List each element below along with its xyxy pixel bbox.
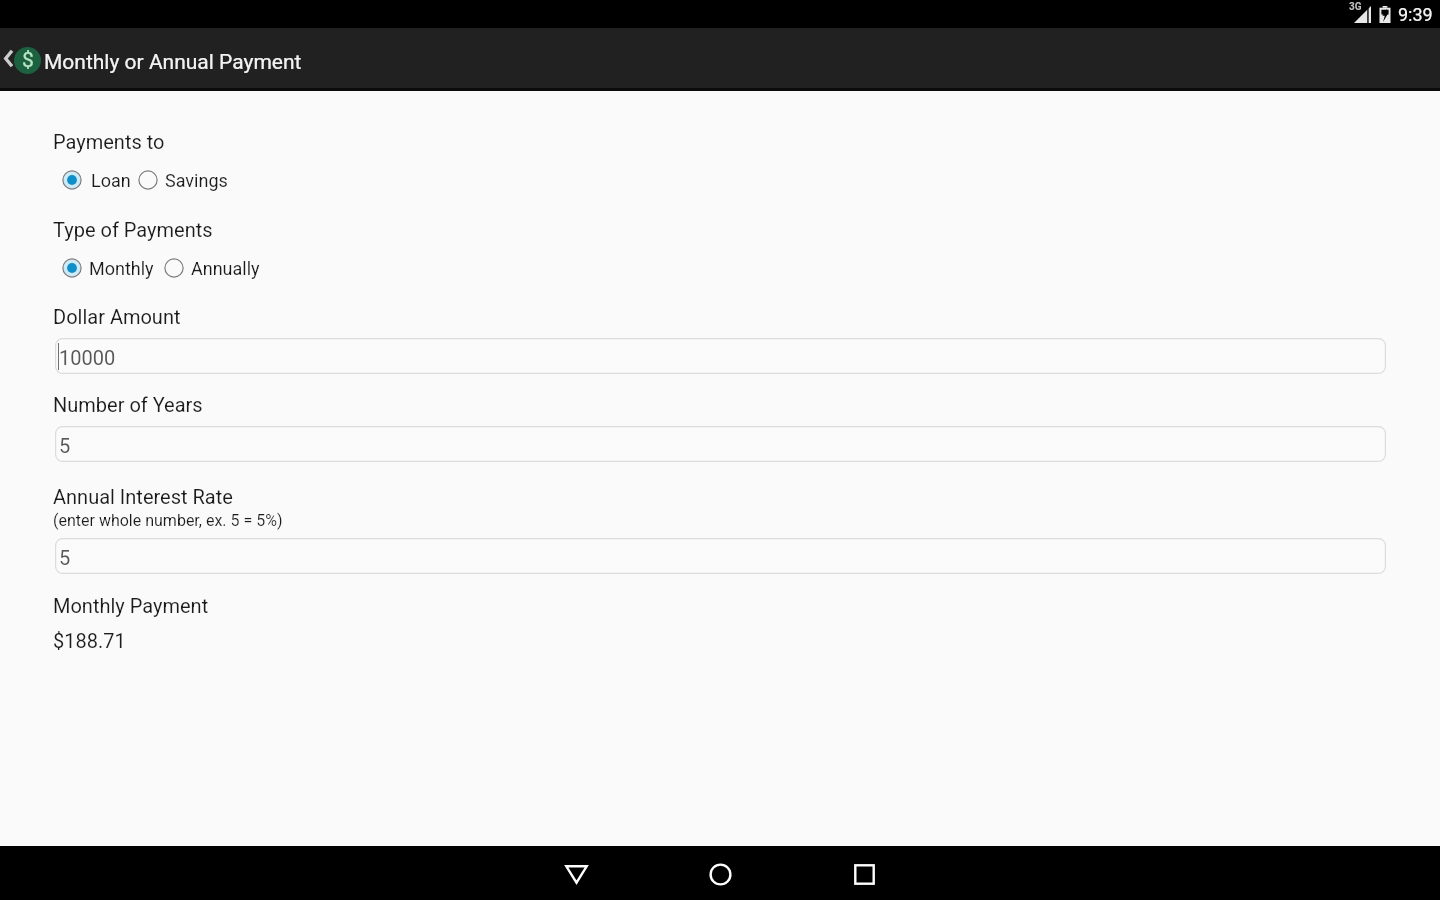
button[interactable]: 5 — [55, 538, 1386, 574]
button[interactable]: Annually — [164, 254, 253, 282]
button[interactable]: Recent apps — [816, 846, 912, 900]
button[interactable]: Loan — [62, 166, 122, 194]
staticText: Payments to — [53, 130, 165, 153]
staticText: Savings — [165, 170, 228, 191]
staticText: Monthly or Annual Payment — [44, 50, 302, 75]
staticText: Number of Years — [53, 393, 203, 416]
button[interactable]: Monthly — [62, 254, 147, 282]
staticText: Annually — [191, 258, 260, 279]
staticText: $188.71 — [53, 629, 126, 652]
staticText: Type of Payments — [53, 218, 213, 241]
button[interactable]: Back — [528, 846, 624, 900]
staticText: 5 — [59, 546, 71, 569]
staticText: Annual Interest Rate — [53, 485, 233, 508]
staticText: 5 — [59, 434, 71, 457]
staticText: 10000 — [59, 346, 116, 369]
staticText: $ — [22, 48, 34, 73]
staticText: Dollar Amount — [53, 305, 181, 328]
staticText: 3G — [1349, 1, 1362, 13]
button[interactable]: Home — [672, 846, 768, 900]
staticText: Loan — [91, 170, 131, 191]
button[interactable]: Navigate up — [0, 28, 44, 88]
button[interactable]: 10000 — [55, 338, 1386, 374]
staticText: 9:39 — [1398, 4, 1433, 25]
button[interactable]: Savings — [138, 166, 221, 194]
staticText: (enter whole number, ex. 5 = 5%) — [53, 511, 283, 530]
staticText: Monthly — [89, 258, 154, 279]
button[interactable]: 5 — [55, 426, 1386, 462]
staticText: Monthly Payment — [53, 594, 209, 617]
